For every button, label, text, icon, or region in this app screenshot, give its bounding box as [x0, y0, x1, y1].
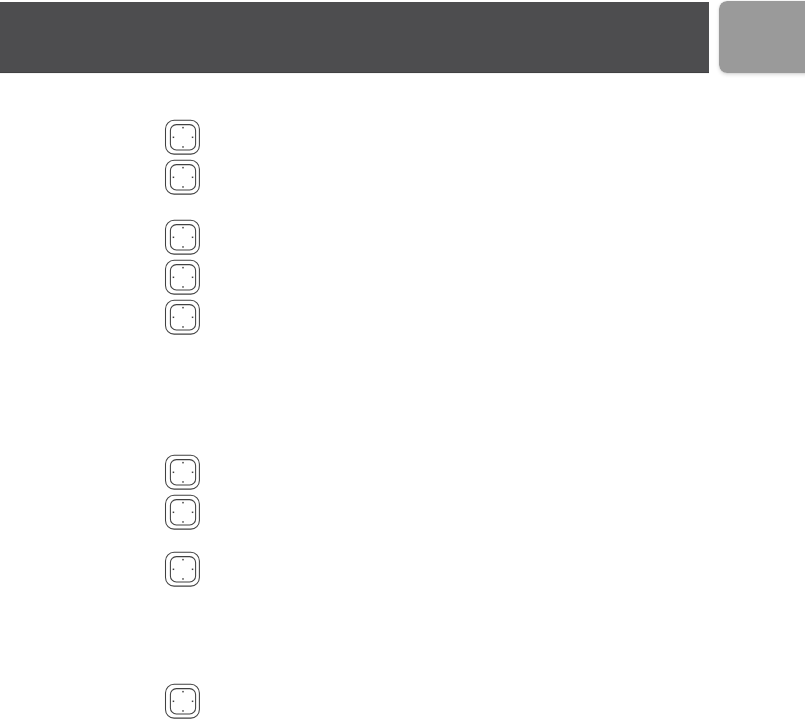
button[interactable]: Row 2	[0, 160, 805, 195]
button[interactable]: Row 4	[0, 260, 805, 295]
button[interactable]: Row 9	[0, 684, 805, 719]
button[interactable]: Row 3	[0, 220, 805, 255]
button[interactable]: Account	[719, 1, 805, 73]
button[interactable]: Row 5	[0, 300, 805, 335]
button[interactable]: Row 7	[0, 495, 805, 530]
button[interactable]: Row 6	[0, 455, 805, 490]
button[interactable]: Row 1	[0, 120, 805, 155]
button[interactable]: Row 8	[0, 552, 805, 587]
